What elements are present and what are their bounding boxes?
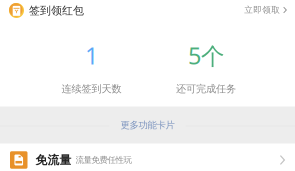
staticText: 立即领取 [244, 5, 280, 15]
staticText: 流量免费任性玩 [75, 155, 131, 165]
staticText: 更多功能卡片 [120, 119, 174, 131]
button[interactable]: 免流量 [0, 146, 295, 171]
staticText: 5个 [188, 39, 224, 71]
button[interactable]: 更多功能卡片 [0, 106, 295, 143]
staticText: 签到领红包 [29, 4, 84, 17]
staticText: 免流量 [35, 153, 71, 167]
button[interactable]: 签到领红包 [9, 1, 84, 20]
staticText: 1 [85, 39, 98, 71]
staticText: 连续签到天数 [61, 83, 121, 95]
button[interactable]: 立即领取 [244, 2, 287, 18]
staticText: 还可完成任务 [176, 83, 236, 95]
